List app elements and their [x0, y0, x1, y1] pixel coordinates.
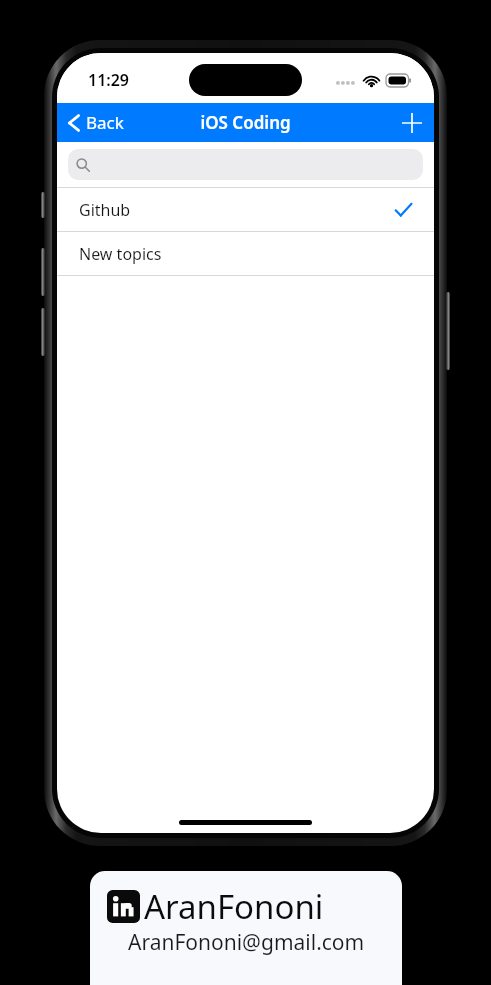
button[interactable]: AranFononi [90, 871, 402, 985]
button[interactable]: Back [57, 103, 134, 142]
button[interactable] [68, 149, 423, 180]
staticText: AranFononi [144, 884, 324, 929]
staticText: iOS Coding [200, 111, 291, 134]
staticText: Github [79, 199, 131, 221]
button[interactable]: Add [390, 103, 434, 142]
staticText: 11:29 [88, 69, 130, 91]
button[interactable]: Github [57, 188, 434, 231]
staticText: AranFononi@gmail.com [128, 928, 365, 957]
staticText: New topics [79, 243, 162, 265]
button[interactable]: New topics [57, 232, 434, 275]
staticText: Back [86, 111, 124, 134]
